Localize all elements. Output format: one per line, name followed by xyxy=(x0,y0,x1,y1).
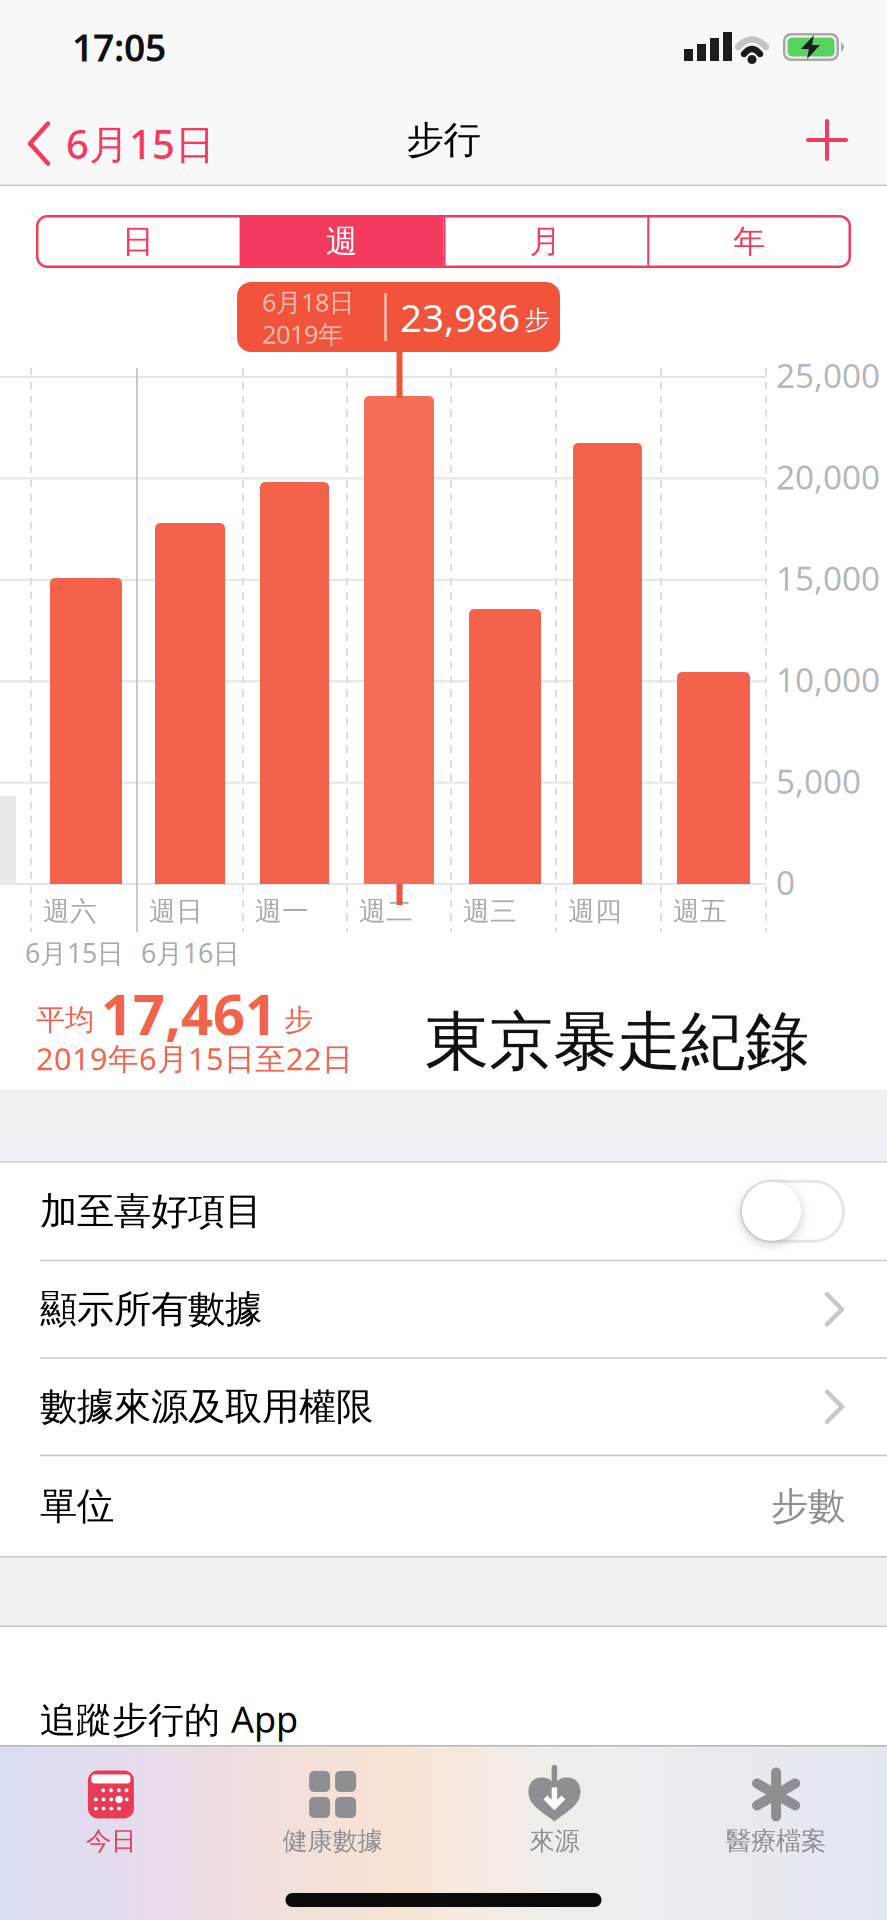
button[interactable]: 來源 xyxy=(444,1756,664,1866)
button[interactable]: 月 xyxy=(443,215,647,268)
staticText: 年 xyxy=(733,222,765,261)
staticText: 6月15日 xyxy=(66,117,215,170)
staticText: 17:05 xyxy=(72,22,166,72)
staticText: 0 xyxy=(776,860,795,904)
staticText: 週一 xyxy=(255,895,309,928)
staticText: 23,986 xyxy=(400,291,520,343)
staticText: 顯示所有數據 xyxy=(40,1286,262,1332)
button[interactable]: 單位 xyxy=(0,1456,887,1556)
staticText: 健康數據 xyxy=(283,1825,383,1856)
staticText: 週日 xyxy=(149,895,203,928)
staticText: 單位 xyxy=(40,1483,114,1529)
button[interactable]: 返回 6月15日 xyxy=(0,117,215,170)
staticText: 10,000 xyxy=(776,657,880,701)
staticText: 2019年6月15日至22日 xyxy=(36,1038,353,1079)
staticText: 週四 xyxy=(568,895,622,928)
staticText: 今日 xyxy=(86,1825,136,1856)
staticText: 步數 xyxy=(771,1483,845,1529)
staticText: 週六 xyxy=(43,895,97,928)
button[interactable]: 加入 xyxy=(808,121,846,159)
button[interactable]: 週 xyxy=(240,215,444,268)
staticText: 步 xyxy=(524,304,549,335)
staticText: 步 xyxy=(284,1002,313,1038)
staticText: 6月16日 xyxy=(141,935,240,970)
button[interactable]: 日 xyxy=(36,215,240,268)
staticText: 追蹤步行的 App xyxy=(40,1695,298,1743)
button[interactable]: 加至喜好項目 xyxy=(0,1163,887,1260)
staticText: 2019年 xyxy=(262,317,343,351)
staticText: 6月18日 xyxy=(262,285,354,319)
staticText: 日 xyxy=(122,222,154,261)
button[interactable]: 今日 xyxy=(1,1756,221,1866)
staticText: 15,000 xyxy=(776,556,880,600)
staticText: 週二 xyxy=(359,895,413,928)
staticText: 數據來源及取用權限 xyxy=(40,1384,373,1430)
button[interactable]: 顯示所有數據 xyxy=(0,1261,887,1357)
staticText: 加至喜好項目 xyxy=(40,1188,262,1234)
staticText: 來源 xyxy=(529,1825,579,1856)
staticText: 6月15日 xyxy=(25,935,124,970)
staticText: 週五 xyxy=(673,895,727,928)
staticText: 月 xyxy=(529,222,561,261)
staticText: 5,000 xyxy=(776,759,861,803)
staticText: 步行 xyxy=(406,117,480,163)
button[interactable]: 健康數據 xyxy=(223,1756,443,1866)
staticText: 週 xyxy=(326,222,358,261)
staticText: 25,000 xyxy=(776,353,880,397)
button[interactable]: 年 xyxy=(647,215,851,268)
staticText: 週三 xyxy=(463,895,517,928)
staticText: 平均 xyxy=(36,1002,94,1038)
staticText: 17,461 xyxy=(101,976,277,1050)
staticText: 東京暴走紀錄 xyxy=(425,1003,809,1081)
button[interactable]: 醫療檔案 xyxy=(666,1756,886,1866)
button[interactable]: 數據來源及取用權限 xyxy=(0,1359,887,1455)
staticText: 20,000 xyxy=(776,454,880,499)
staticText: 醫療檔案 xyxy=(726,1825,826,1856)
